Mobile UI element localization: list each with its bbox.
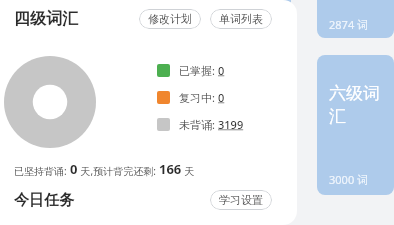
- staticText: 未背诵:: [179, 117, 215, 132]
- staticText: 0: [218, 90, 225, 105]
- staticText: 天,预计背完还剩:: [78, 164, 159, 178]
- staticText: 166: [159, 160, 182, 178]
- button[interactable]: 修改计划: [139, 9, 201, 29]
- staticText: 六级词汇: [329, 83, 394, 127]
- button[interactable]: 2874 词: [317, 0, 394, 38]
- staticText: 2874 词: [329, 17, 369, 32]
- other: Progress chart: [4, 56, 96, 148]
- staticText: 修改计划: [148, 12, 192, 26]
- staticText: 已坚持背诵:: [14, 164, 70, 178]
- staticText: 学习设置: [219, 193, 263, 207]
- staticText: 四级词汇: [14, 9, 78, 29]
- staticText: 3199: [218, 117, 244, 132]
- button[interactable]: [277, 0, 291, 38]
- button[interactable]: 六级词汇: [317, 55, 394, 195]
- button[interactable]: 单词列表: [210, 9, 272, 29]
- staticText: 单词列表: [219, 12, 263, 26]
- staticText: 今日任务: [14, 191, 74, 210]
- staticText: 天: [182, 164, 195, 178]
- button[interactable]: 学习设置: [210, 190, 272, 210]
- staticText: 0: [218, 63, 225, 78]
- staticText: 3000 词: [329, 172, 369, 187]
- staticText: 0: [70, 160, 78, 178]
- staticText: 复习中:: [179, 90, 215, 105]
- staticText: 已掌握:: [179, 63, 215, 78]
